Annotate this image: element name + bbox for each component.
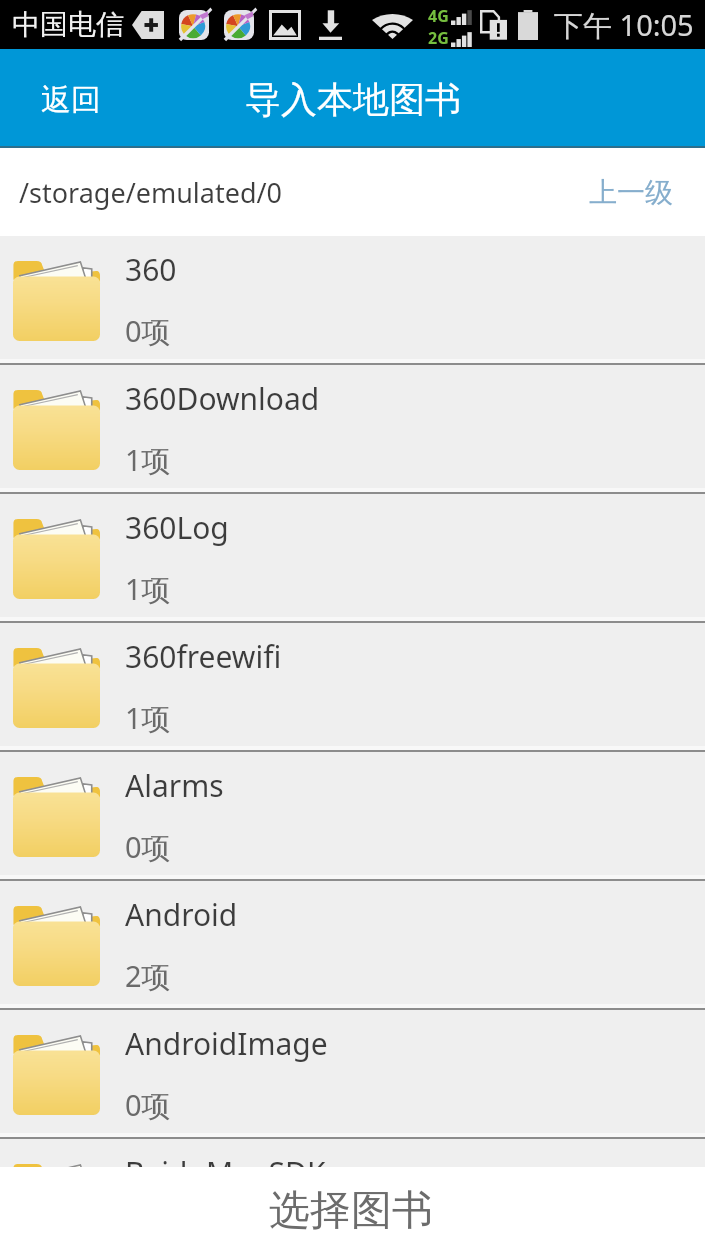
staticText: 0项 [125, 311, 171, 351]
staticText: 360Log [125, 507, 229, 548]
staticText: 选择图书 [269, 1185, 433, 1237]
button[interactable]: 返回 [0, 49, 129, 148]
staticText: 导入本地图书 [245, 77, 461, 122]
button[interactable]: Alarms [0, 752, 705, 881]
button[interactable]: 360Download [0, 365, 705, 494]
staticText: 下午 10:05 [554, 5, 694, 45]
button[interactable]: 360Log [0, 494, 705, 623]
staticText: 返回 [41, 81, 101, 119]
staticText: 1项 [125, 440, 171, 480]
staticText: 360Download [125, 378, 320, 419]
staticText: 1项 [125, 698, 171, 738]
staticText: Alarms [125, 765, 224, 806]
staticText: 1项 [125, 569, 171, 609]
button[interactable]: BaiduMapSDK [0, 1139, 705, 1167]
button[interactable]: 选择图书 [0, 1167, 705, 1254]
button[interactable]: Android [0, 881, 705, 1010]
staticText: 2项 [125, 956, 171, 996]
staticText: 0项 [125, 1085, 171, 1125]
staticText: AndroidImage [125, 1023, 328, 1064]
staticText: 360freewifi [125, 636, 282, 677]
staticText: 360 [125, 249, 177, 290]
staticText: 中国电信 [12, 7, 124, 42]
staticText: Android [125, 894, 238, 935]
button[interactable]: AndroidImage [0, 1010, 705, 1139]
button[interactable]: 360 [0, 236, 705, 365]
staticText: 0项 [125, 827, 171, 867]
staticText: BaiduMapSDK [125, 1152, 326, 1167]
button[interactable]: 上一级 [563, 148, 705, 236]
staticText: 2G [428, 27, 449, 49]
button[interactable]: 360freewifi [0, 623, 705, 752]
staticText: /storage/emulated/0 [19, 174, 283, 211]
staticText: 4G [428, 5, 449, 27]
staticText: 上一级 [589, 175, 673, 210]
